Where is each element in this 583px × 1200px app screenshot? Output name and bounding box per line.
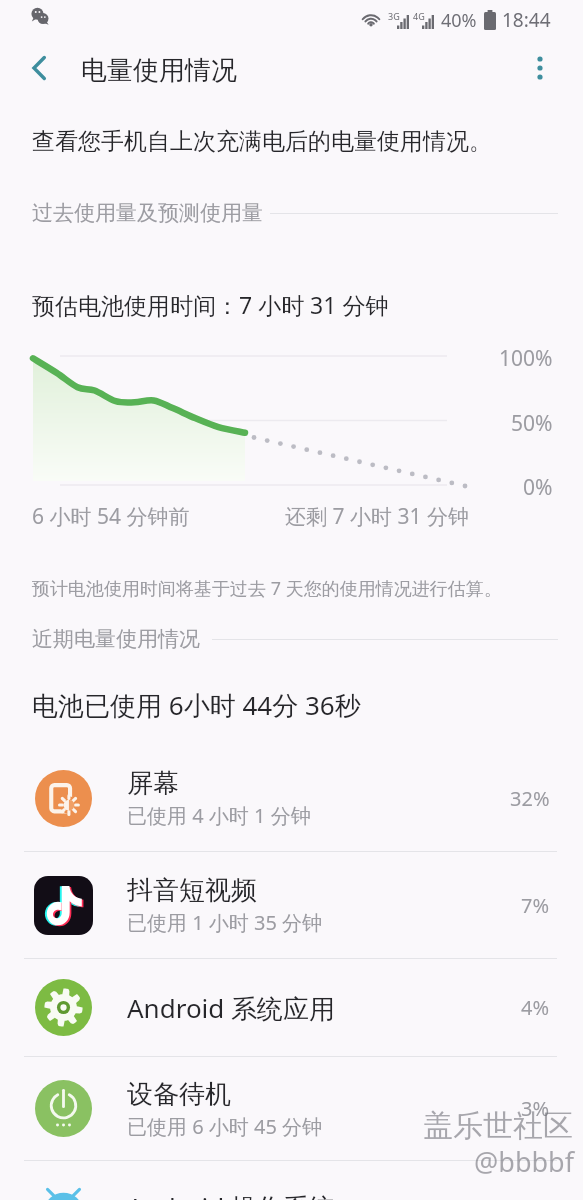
button[interactable]: More options: [511, 39, 569, 97]
button[interactable]: 抖音短视频: [0, 852, 583, 958]
button[interactable]: 设备待机: [0, 1057, 583, 1160]
button[interactable]: 屏幕: [0, 745, 583, 851]
staticText: 3G: [388, 10, 400, 22]
staticText: 已使用 6 小时 45 分钟: [127, 1113, 323, 1140]
staticText: 电池已使用 6小时 44分 36秒: [32, 687, 361, 723]
staticText: 已使用 1 小时 35 分钟: [127, 909, 323, 936]
staticText: 还剩 7 小时 31 分钟: [285, 502, 469, 531]
staticText: 已使用 4 小时 1 分钟: [127, 802, 311, 829]
staticText: 100%: [499, 344, 553, 373]
button[interactable]: Back: [10, 39, 68, 97]
staticText: 过去使用量及预测使用量: [32, 200, 263, 226]
staticText: 盖乐世社区: [423, 1107, 573, 1145]
staticText: 近期电量使用情况: [32, 626, 200, 652]
staticText: 40%: [441, 8, 477, 33]
staticText: 预估电池使用时间：7 小时 31 分钟: [32, 289, 389, 320]
staticText: 50%: [511, 409, 553, 438]
staticText: 预计电池使用时间将基于过去 7 天您的使用情况进行估算。: [32, 576, 502, 601]
staticText: 屏幕: [127, 767, 179, 800]
staticText: 18:44: [502, 7, 551, 33]
staticText: @bbbbf: [474, 1143, 574, 1180]
staticText: 查看您手机自上次充满电后的电量使用情况。: [32, 127, 492, 156]
staticText: 7%: [521, 892, 550, 919]
button[interactable]: Android 操作系统: [0, 1161, 583, 1200]
staticText: Android 操作系统: [127, 1189, 336, 1200]
staticText: 设备待机: [127, 1078, 231, 1111]
staticText: 32%: [510, 785, 550, 812]
staticText: 抖音短视频: [127, 874, 257, 907]
staticText: 电量使用情况: [81, 54, 237, 87]
staticText: 3%: [521, 1095, 550, 1122]
button[interactable]: Android 系统应用: [0, 959, 583, 1056]
staticText: 4G: [413, 10, 425, 22]
staticText: 4%: [521, 994, 550, 1021]
staticText: 0%: [523, 473, 553, 502]
staticText: Android 系统应用: [127, 990, 336, 1026]
staticText: 6 小时 54 分钟前: [32, 502, 190, 531]
